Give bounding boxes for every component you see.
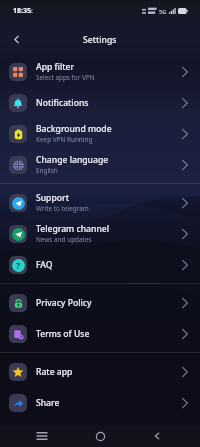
button[interactable]: Recent apps xyxy=(31,426,53,446)
staticText: Background mode xyxy=(36,123,112,135)
button[interactable]: Telegram channel xyxy=(0,218,200,249)
staticText: ? xyxy=(16,260,21,272)
button[interactable]: Back xyxy=(146,426,168,446)
button[interactable]: Back xyxy=(6,29,26,49)
staticText: Telegram channel xyxy=(36,223,110,235)
staticText: Rate app xyxy=(36,366,73,378)
button[interactable]: Home xyxy=(89,426,111,446)
staticText: Terms of Use xyxy=(36,328,90,340)
button[interactable]: Privacy Policy xyxy=(0,287,200,318)
staticText: Change language xyxy=(36,154,109,166)
button[interactable]: Terms of Use xyxy=(0,318,200,349)
staticText: Notifications xyxy=(36,97,89,109)
staticText: English xyxy=(36,166,58,175)
button[interactable]: Support xyxy=(0,187,200,218)
staticText: App filter xyxy=(36,61,75,73)
staticText: Settings xyxy=(83,34,117,46)
staticText: Privacy Policy xyxy=(36,297,92,309)
staticText: 18:35 xyxy=(13,6,31,16)
staticText: Write to telegram xyxy=(36,204,89,213)
staticText: Keep VPN Running xyxy=(36,135,93,144)
button[interactable]: Rate app xyxy=(0,356,200,387)
staticText: Share xyxy=(36,397,60,409)
staticText: Support xyxy=(36,192,69,204)
staticText: News and updates xyxy=(36,235,92,244)
button[interactable]: Notifications xyxy=(0,87,200,118)
button[interactable]: App filter xyxy=(0,56,200,87)
button[interactable]: Background mode xyxy=(0,118,200,149)
staticText: 5G xyxy=(159,8,167,15)
button[interactable]: Share xyxy=(0,387,200,418)
staticText: FAQ xyxy=(36,259,53,271)
button[interactable]: ? xyxy=(0,249,200,280)
button[interactable]: Change language xyxy=(0,149,200,180)
staticText: Select apps for VPN xyxy=(36,73,95,82)
